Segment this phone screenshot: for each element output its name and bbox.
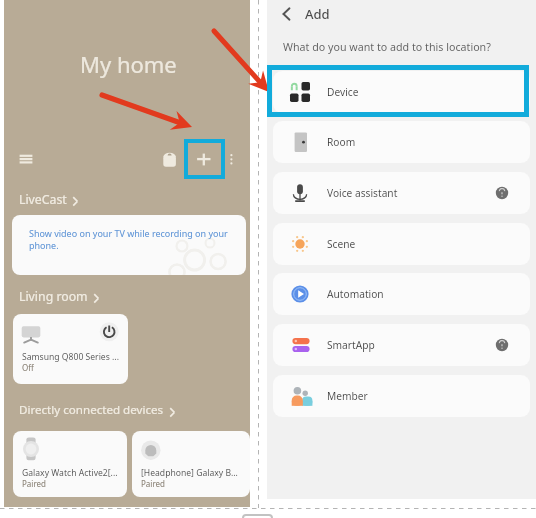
staticText: Off — [22, 362, 34, 373]
staticText: My home — [80, 49, 177, 79]
staticText: Scene — [327, 237, 356, 251]
button[interactable]: Device highlight — [267, 65, 529, 117]
staticText: Show video on your TV while recording on… — [29, 227, 228, 252]
staticText: Galaxy Watch Active2[... — [22, 467, 118, 479]
staticText: LiveCast — [19, 191, 67, 208]
staticText: Automation — [327, 287, 384, 301]
button[interactable]: Galaxy Watch Active2[... — [13, 431, 127, 497]
button[interactable]: Member — [273, 375, 530, 417]
button[interactable]: Add — [193, 148, 217, 172]
staticText: Voice assistant — [327, 186, 398, 200]
button[interactable]: Scene — [273, 223, 530, 265]
staticText: Samsung Q800 Series ... — [22, 351, 119, 363]
button[interactable]: Menu — [15, 148, 41, 172]
button[interactable]: Living room — [19, 288, 100, 305]
staticText: Living room — [19, 288, 88, 305]
button[interactable]: Help — [495, 338, 509, 352]
staticText: Device — [327, 85, 359, 99]
button[interactable]: Help — [495, 186, 509, 200]
staticText: Paired — [141, 478, 165, 489]
staticText: SmartApp — [327, 338, 375, 352]
button[interactable]: Back — [277, 3, 299, 25]
button[interactable]: [Headphone] Galaxy B... — [132, 431, 250, 497]
button[interactable]: Automation — [273, 273, 530, 315]
staticText: Paired — [22, 478, 46, 489]
staticText: Room — [327, 135, 356, 149]
button[interactable]: More options — [224, 148, 239, 172]
staticText: Member — [327, 389, 368, 403]
button[interactable]: Device — [273, 71, 530, 113]
button[interactable]: Room — [273, 121, 530, 163]
button[interactable]: Show video on your TV while recording on… — [12, 215, 246, 275]
button[interactable]: Directly connected devices — [19, 402, 176, 418]
staticText: Directly connected devices — [19, 402, 164, 418]
staticText: Add — [305, 5, 330, 23]
button[interactable]: Add highlight — [184, 139, 225, 179]
button[interactable]: SmartApp — [273, 324, 530, 366]
button[interactable]: LiveCast — [19, 191, 79, 208]
staticText: What do you want to add to this location… — [283, 40, 491, 55]
button[interactable]: Voice assistant — [273, 172, 530, 214]
staticText: [Headphone] Galaxy B... — [141, 467, 238, 479]
button[interactable]: Shop — [161, 148, 181, 172]
button[interactable]: Samsung Q800 Series ... — [13, 314, 128, 384]
